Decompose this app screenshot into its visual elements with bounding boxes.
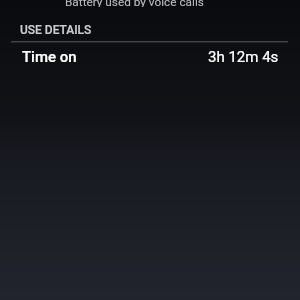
staticText: USE DETAILS	[20, 23, 92, 37]
staticText: 3h 12m 4s	[208, 48, 279, 66]
staticText: Time on	[22, 48, 77, 66]
staticText: Battery used by voice calls	[65, 0, 204, 7]
button[interactable]: Time on	[0, 43, 300, 67]
